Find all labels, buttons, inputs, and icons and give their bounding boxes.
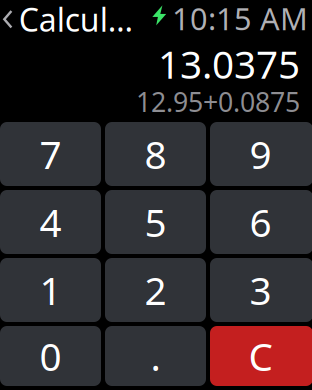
- button[interactable]: 9: [210, 122, 312, 186]
- button[interactable]: C: [210, 326, 312, 386]
- staticText: 7: [39, 128, 61, 180]
- button[interactable]: Calcul…: [1, 0, 135, 42]
- staticText: 0: [39, 330, 61, 382]
- button[interactable]: 0: [0, 326, 101, 386]
- staticText: .: [150, 330, 160, 382]
- staticText: 8: [144, 128, 166, 180]
- button[interactable]: 1: [0, 258, 101, 322]
- staticText: C: [248, 330, 272, 382]
- staticText: 2: [144, 264, 166, 316]
- button[interactable]: 3: [210, 258, 312, 322]
- staticText: Calcul…: [19, 0, 133, 40]
- staticText: 5: [144, 196, 166, 248]
- button[interactable]: 8: [105, 122, 206, 186]
- staticText: 12.95+0.0875: [136, 84, 300, 119]
- button[interactable]: .: [105, 326, 206, 386]
- staticText: 10:15 AM: [172, 0, 308, 39]
- button[interactable]: 6: [210, 190, 312, 254]
- staticText: 4: [39, 196, 61, 248]
- staticText: 1: [39, 264, 61, 316]
- button[interactable]: 7: [0, 122, 101, 186]
- button[interactable]: 4: [0, 190, 101, 254]
- staticText: 13.0375: [158, 38, 300, 89]
- staticText: 6: [249, 196, 271, 248]
- staticText: 3: [249, 264, 271, 316]
- button[interactable]: 5: [105, 190, 206, 254]
- button[interactable]: 2: [105, 258, 206, 322]
- staticText: 9: [249, 128, 271, 180]
